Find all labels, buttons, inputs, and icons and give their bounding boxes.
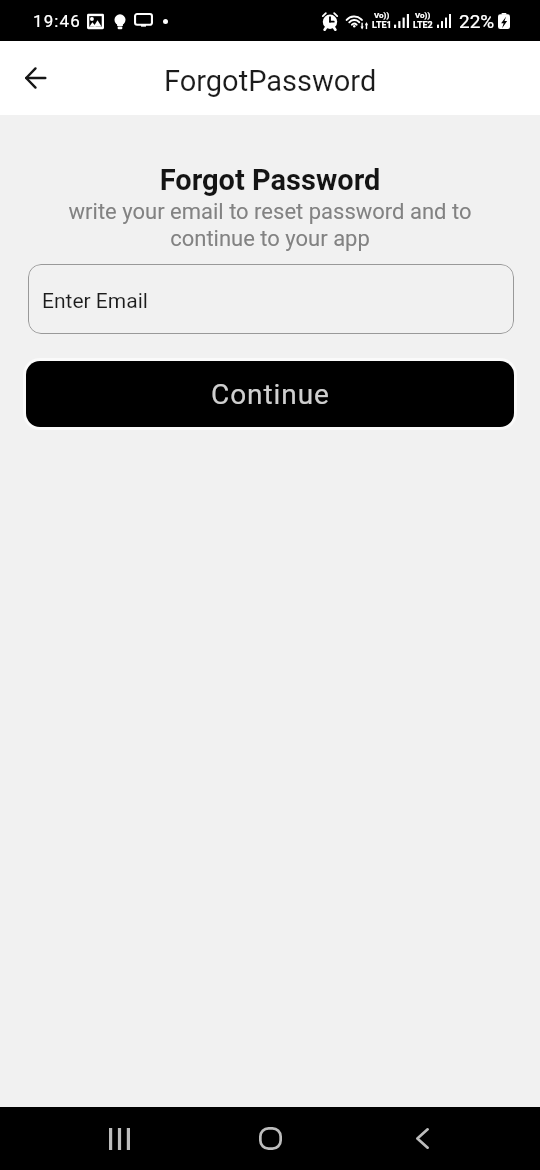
- staticText: LTE2: [413, 20, 433, 31]
- button[interactable]: Back: [389, 1107, 455, 1170]
- staticText: Enter Email: [42, 289, 148, 314]
- staticText: 19:46: [33, 11, 81, 31]
- staticText: ForgotPassword: [164, 64, 377, 98]
- button[interactable]: Recent apps: [86, 1107, 152, 1170]
- staticText: Vo)): [415, 11, 431, 20]
- button[interactable]: Continue: [26, 361, 514, 427]
- staticText: write your email to reset password and t…: [50, 199, 490, 251]
- button[interactable]: Enter Email: [28, 264, 514, 334]
- staticText: Forgot Password: [0, 163, 540, 197]
- staticText: LTE1: [372, 20, 392, 31]
- staticText: Vo)): [374, 11, 390, 20]
- staticText: 22%: [459, 10, 495, 32]
- staticText: Continue: [211, 378, 330, 411]
- button[interactable]: Back: [11, 54, 59, 102]
- button[interactable]: Home: [237, 1107, 303, 1170]
